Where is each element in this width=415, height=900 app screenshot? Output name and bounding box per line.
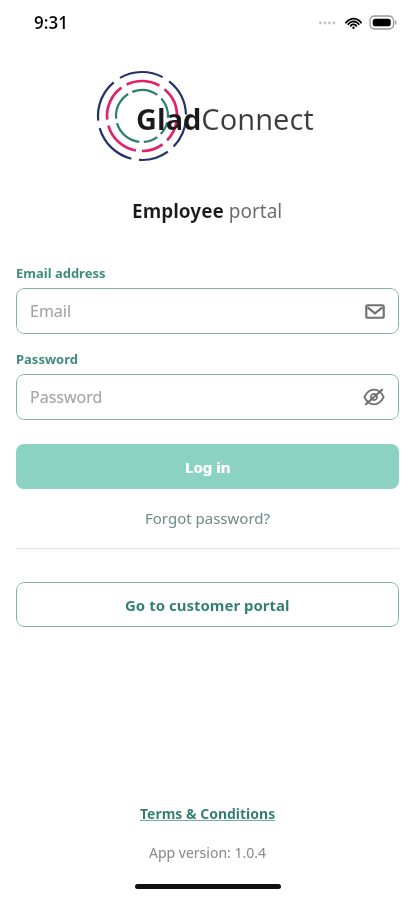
staticText: GladConnect — [136, 99, 314, 138]
staticText: Email — [30, 300, 72, 322]
staticText: App version: 1.0.4 — [149, 843, 266, 862]
staticText: Terms & Conditions — [140, 804, 276, 823]
staticText: Password — [30, 386, 103, 408]
button[interactable]: Forgot password? — [16, 501, 399, 535]
staticText: Go to customer portal — [125, 595, 290, 615]
button[interactable]: Log in — [16, 444, 399, 489]
staticText: Employee portal — [132, 198, 283, 224]
staticText: Forgot password? — [145, 508, 271, 528]
other: Email — [365, 304, 385, 319]
button[interactable]: Go to customer portal — [16, 582, 399, 627]
staticText: 9:31 — [34, 11, 68, 34]
staticText: Password — [16, 350, 78, 368]
staticText: Log in — [185, 457, 231, 477]
other: Show password — [363, 388, 385, 406]
staticText: Email address — [16, 264, 106, 282]
button[interactable]: Terms & Conditions — [0, 804, 415, 823]
button[interactable]: Password — [16, 374, 399, 420]
button[interactable]: Email — [16, 288, 399, 334]
